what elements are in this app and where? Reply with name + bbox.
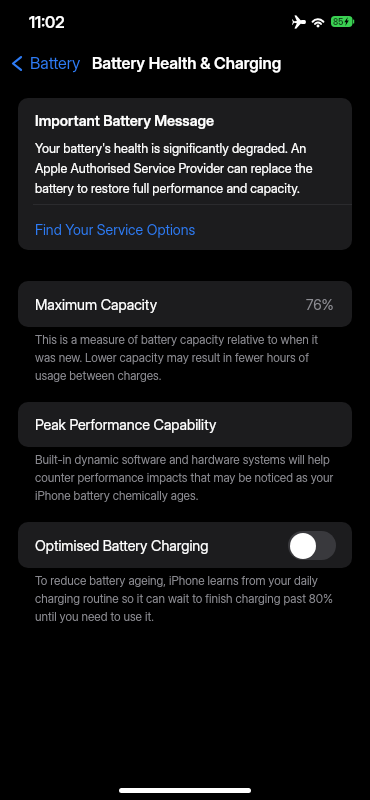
- button[interactable]: Maximum Capacity: [18, 281, 352, 327]
- button[interactable]: Peak Performance Capability: [18, 402, 352, 447]
- staticText: 76%: [306, 296, 334, 313]
- staticText: Peak Performance Capability: [35, 416, 217, 433]
- staticText: Built-in dynamic software and hardware s…: [35, 450, 340, 504]
- staticText: To reduce battery ageing, iPhone learns …: [35, 571, 340, 625]
- staticText: Optimised Battery Charging: [35, 537, 209, 554]
- staticText: Maximum Capacity: [35, 296, 158, 313]
- button[interactable]: Optimised Battery Charging toggle: [288, 531, 336, 560]
- staticText: Battery Health & Charging: [92, 53, 282, 73]
- button[interactable]: Optimised Battery Charging: [18, 522, 352, 568]
- staticText: 11:02: [29, 13, 65, 32]
- button[interactable]: Battery: [7, 50, 86, 76]
- staticText: This is a measure of battery capacity re…: [35, 330, 340, 384]
- button[interactable]: Find Your Service Options: [18, 200, 352, 250]
- staticText: Important Battery Message: [35, 112, 215, 130]
- staticText: Your battery's health is significantly d…: [35, 137, 340, 197]
- staticText: Find Your Service Options: [35, 221, 196, 238]
- staticText: Battery: [30, 53, 81, 73]
- staticText: 85: [333, 17, 344, 27]
